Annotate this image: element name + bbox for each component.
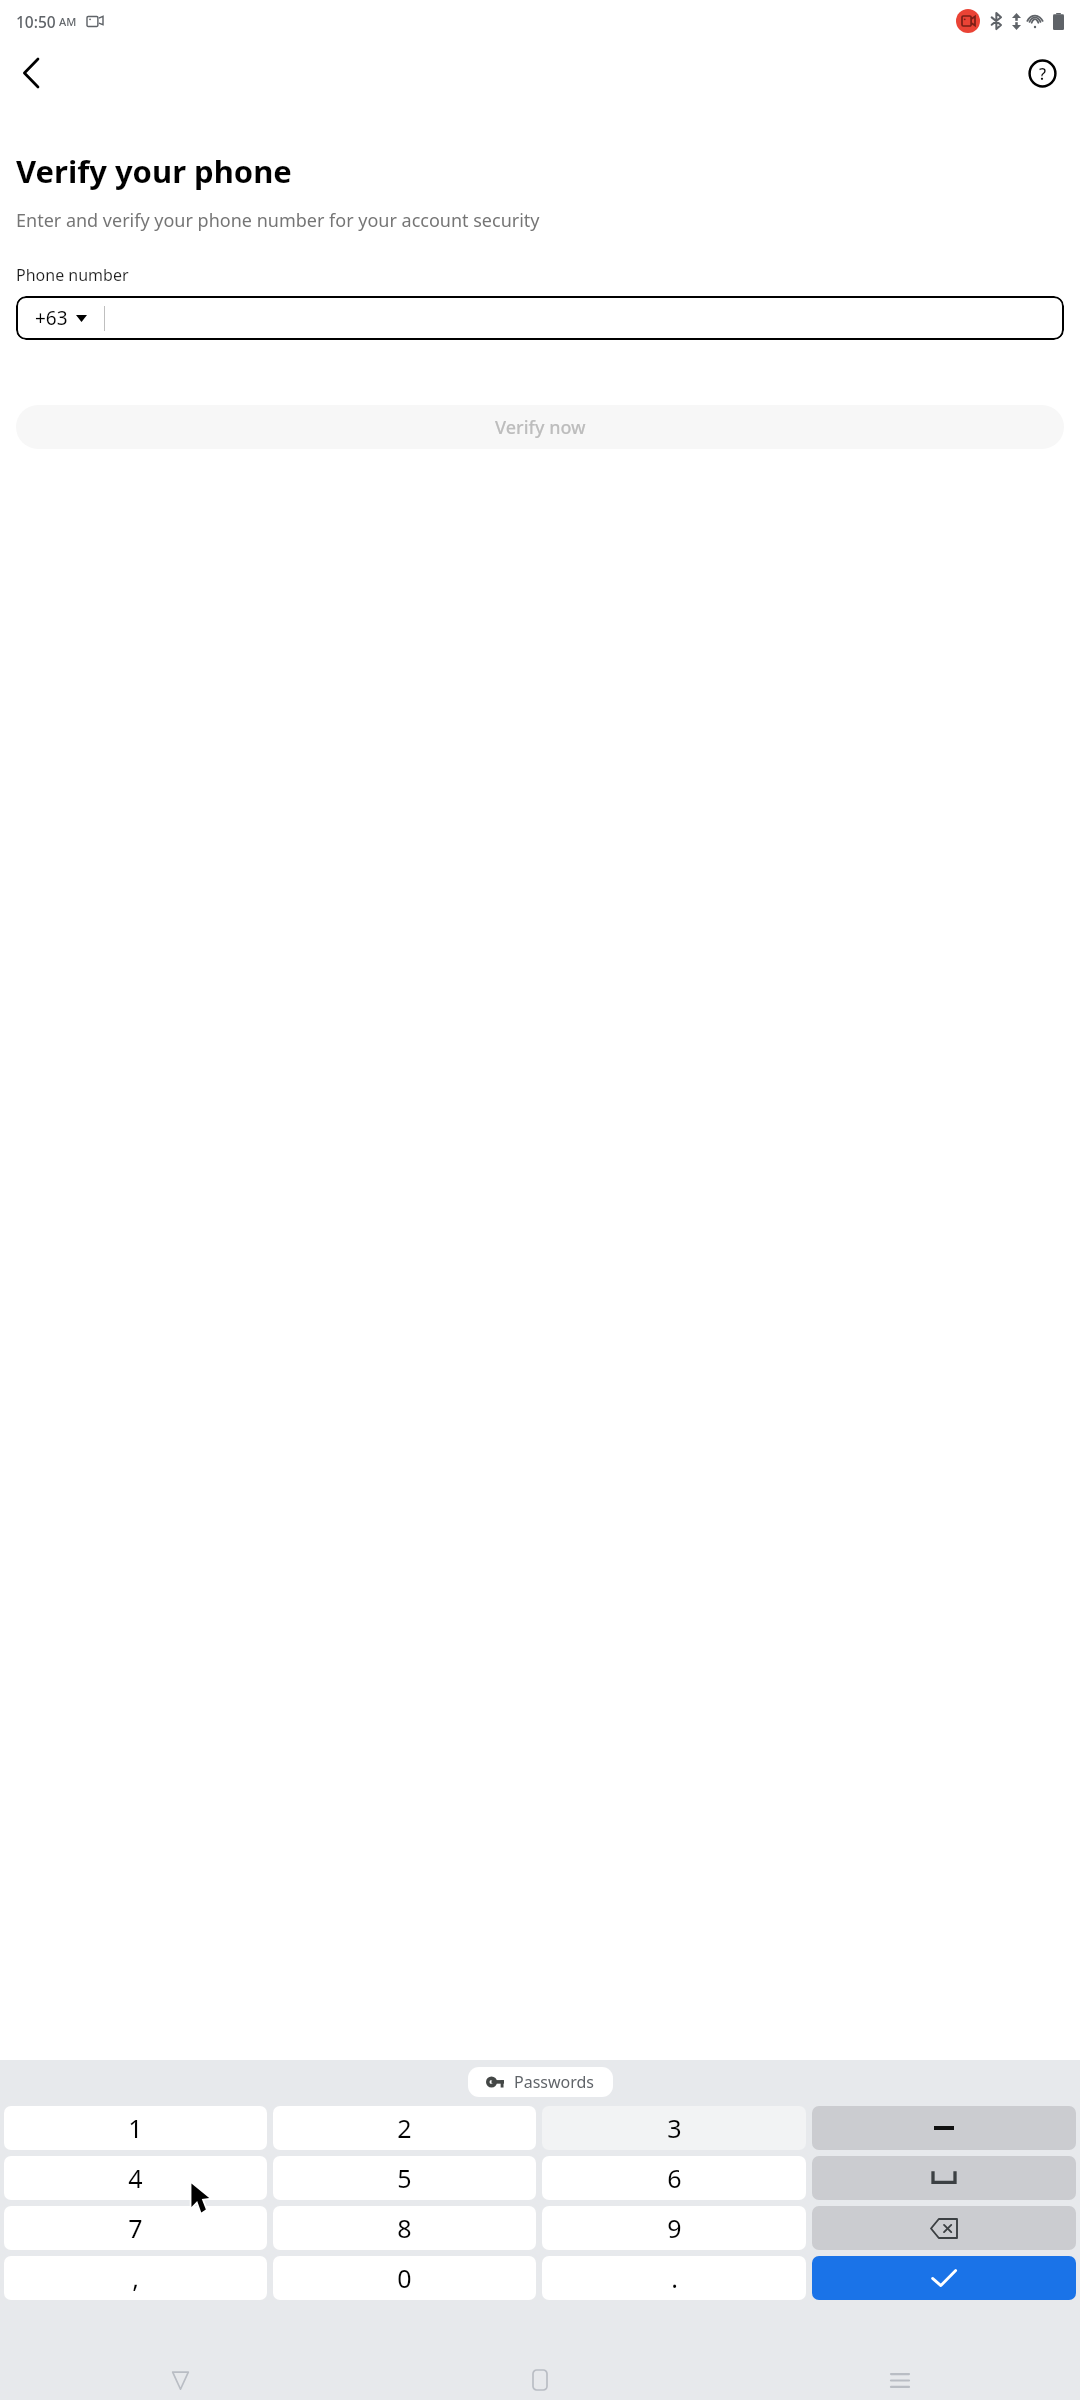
staticText: 9 (667, 2211, 682, 2245)
button[interactable]: Delete (812, 2206, 1076, 2250)
button[interactable]: Space (812, 2156, 1076, 2200)
staticText: Verify your phone (16, 150, 292, 192)
button[interactable]: 1 (4, 2106, 267, 2150)
button[interactable]: +63 (16, 296, 1064, 340)
button[interactable]: 3 (542, 2106, 806, 2150)
button[interactable]: Enter (812, 2256, 1076, 2300)
button[interactable]: +63 (22, 299, 100, 337)
staticText: 3 (667, 2111, 682, 2145)
staticText: Verify now (495, 415, 586, 440)
staticText: 5 (397, 2161, 412, 2195)
staticText: 8 (397, 2211, 412, 2245)
button[interactable]: , (4, 2256, 267, 2300)
staticText: 10:50 (16, 11, 56, 32)
button[interactable]: 8 (273, 2206, 536, 2250)
button[interactable]: . (542, 2256, 806, 2300)
staticText: +63 (35, 305, 68, 331)
staticText: 2 (397, 2111, 412, 2145)
staticText: 1 (128, 2111, 143, 2145)
button[interactable]: 6 (542, 2156, 806, 2200)
button[interactable]: 4 (4, 2156, 267, 2200)
staticText: ? (1039, 63, 1047, 85)
button[interactable]: Minus (812, 2106, 1076, 2150)
button[interactable]: Passwords (468, 2067, 613, 2097)
button[interactable]: 5 (273, 2156, 536, 2200)
button[interactable]: 2 (273, 2106, 536, 2150)
staticText: 0 (397, 2261, 412, 2295)
button[interactable]: 7 (4, 2206, 267, 2250)
button[interactable]: Recent apps (720, 2360, 1080, 2400)
staticText: 7 (128, 2211, 143, 2245)
button[interactable]: Help (1018, 49, 1066, 97)
staticText: Passwords (514, 2071, 595, 2093)
staticText: . (671, 2261, 678, 2295)
staticText: Phone number (16, 264, 129, 286)
button[interactable]: Home (360, 2360, 720, 2400)
staticText: AM (59, 14, 77, 29)
staticText: 4 (128, 2161, 143, 2195)
staticText: 6 (667, 2161, 682, 2195)
button[interactable]: Back (8, 49, 56, 97)
staticText: Enter and verify your phone number for y… (16, 208, 540, 233)
button[interactable]: Verify now (16, 405, 1064, 449)
staticText: , (132, 2261, 139, 2295)
button[interactable]: 9 (542, 2206, 806, 2250)
button[interactable]: 0 (273, 2256, 536, 2300)
button[interactable]: Back (0, 2360, 360, 2400)
